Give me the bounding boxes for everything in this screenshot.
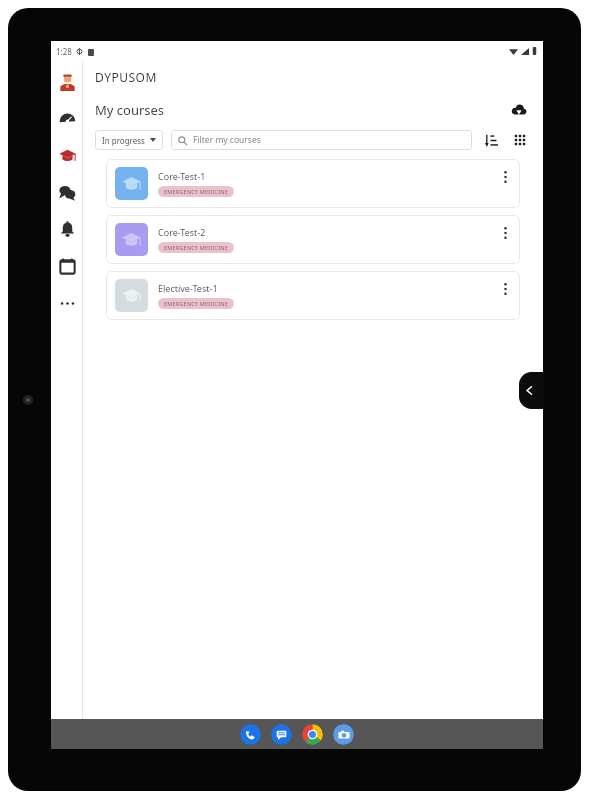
staticText: My courses <box>95 101 165 119</box>
button[interactable]: Camera <box>333 724 354 745</box>
staticText: In progress <box>102 135 145 146</box>
staticText: Elective-Test-1 <box>158 282 218 294</box>
button[interactable]: Calendar <box>56 255 78 277</box>
button[interactable]: Messages <box>271 724 292 745</box>
button[interactable]: Elective-Test-1 <box>106 271 520 320</box>
button[interactable]: Sort courses <box>481 130 501 150</box>
button[interactable]: Core-Test-2 <box>106 215 520 264</box>
staticText: EMERGENCY MEDICINE <box>164 188 228 195</box>
staticText: EMERGENCY MEDICINE <box>164 244 228 251</box>
button[interactable]: Core-Test-1 <box>106 159 520 208</box>
button[interactable]: Course options <box>496 225 514 255</box>
staticText: Filter my courses <box>193 134 261 146</box>
button[interactable]: More <box>56 292 78 314</box>
button[interactable]: Profile <box>57 72 77 92</box>
staticText: Core-Test-2 <box>158 226 206 238</box>
button[interactable]: Messages <box>56 181 78 203</box>
button[interactable]: Phone <box>240 724 261 745</box>
button[interactable]: In progress <box>95 130 163 150</box>
button[interactable]: Course options <box>496 281 514 311</box>
staticText: 1:28 <box>56 46 72 57</box>
staticText: EMERGENCY MEDICINE <box>164 300 228 307</box>
staticText: DYPUSOM <box>95 69 157 85</box>
button[interactable]: Chrome <box>302 724 323 745</box>
staticText: Core-Test-1 <box>158 170 206 182</box>
button[interactable]: Filter my courses <box>171 130 472 150</box>
button[interactable]: Course options <box>496 169 514 199</box>
button[interactable]: Notifications <box>56 218 78 240</box>
button[interactable]: Expand side panel <box>519 372 544 409</box>
button[interactable]: Dashboard <box>56 107 78 129</box>
button[interactable]: Grid view <box>510 130 530 150</box>
button[interactable]: Download courses <box>508 99 530 121</box>
button[interactable]: My courses <box>56 144 78 166</box>
